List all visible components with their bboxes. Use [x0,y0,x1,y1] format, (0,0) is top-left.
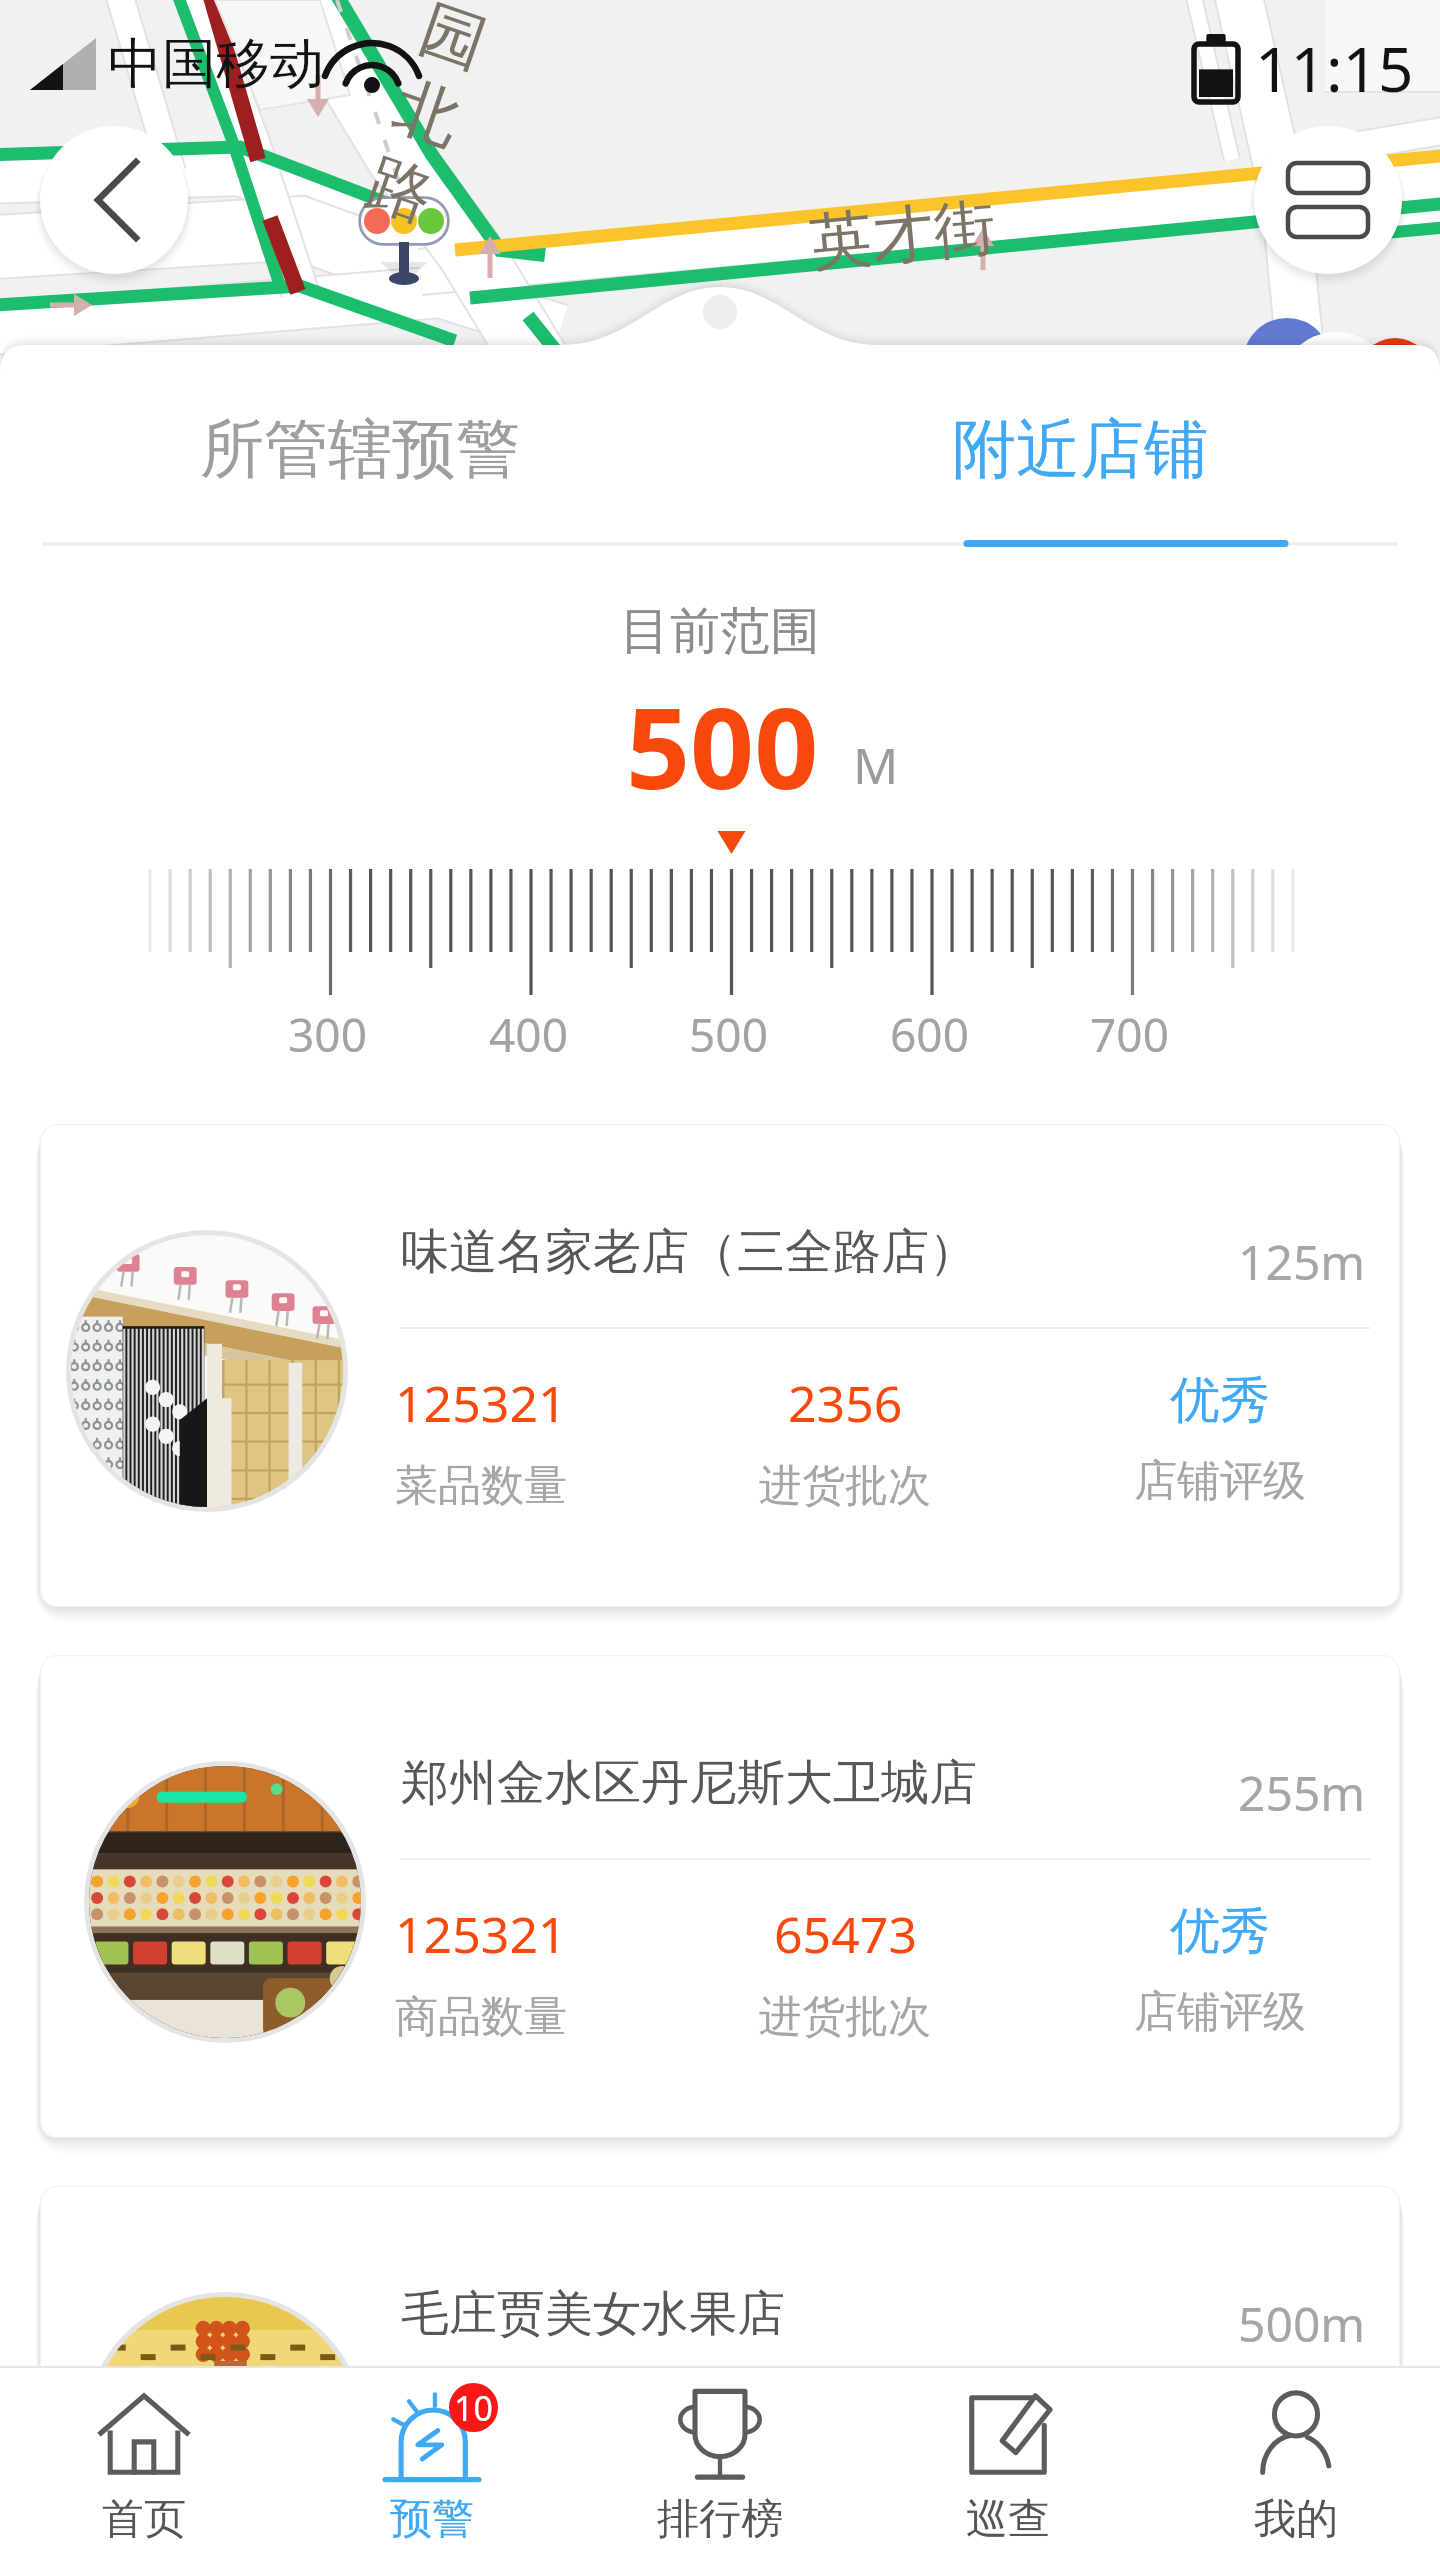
staticText: 北 [384,65,470,162]
staticText: 菜品数量 [395,1459,567,1513]
staticText: 125m [1238,1229,1366,1294]
staticText: 店铺评级 [1134,1985,1306,2039]
staticText: 65473 [774,1900,917,1968]
staticText: 进货批次 [759,2521,931,2560]
staticText: 125321 [395,1900,567,1968]
staticText: 商品数量 [395,1990,567,2044]
staticText: 500 [689,1003,768,1066]
staticText: 附近店铺 [952,409,1208,490]
button[interactable]: 10 [288,2366,576,2560]
staticText: 125321 [395,1369,567,1437]
button[interactable]: Show list [1254,126,1402,274]
button[interactable]: 我的 [1152,2366,1440,2560]
staticText: 首页 [102,2493,186,2546]
staticText: 商品数量 [395,2521,567,2560]
staticText: 优秀 [1170,1900,1270,1963]
staticText: 预警 [390,2493,474,2546]
staticText: 店铺评级 [1134,1454,1306,1508]
staticText: 我的 [1254,2493,1338,2546]
staticText: 毛庄贾美女水果店 [401,2284,785,2344]
staticText: 2356 [788,1369,903,1437]
button[interactable]: 郑州金水区丹尼斯大卫城店 [40,1655,1400,2138]
staticText: 味道名家老店（三全路店） [401,1222,977,1282]
staticText: 优秀 [1170,2431,1270,2494]
staticText: 500 [626,669,819,822]
button[interactable]: 首页 [0,2366,288,2560]
staticText: 排行榜 [657,2493,783,2546]
button[interactable]: Back [40,126,188,274]
button[interactable]: 所管辖预警 [0,345,720,545]
staticText: 400 [489,1003,568,1066]
staticText: 目前范围 [620,600,820,663]
staticText: 255m [1238,1760,1366,1825]
staticText: 所管辖预警 [200,409,520,490]
staticText: 600 [890,1003,969,1066]
staticText: 优秀 [1170,1369,1270,1432]
button[interactable]: 排行榜 [576,2366,864,2560]
staticText: 园 [410,0,497,86]
staticText: 路 [357,141,444,239]
staticText: M [853,731,899,799]
staticText: 700 [1090,1003,1169,1066]
staticText: 郑州金水区丹尼斯大卫城店 [401,1753,977,1813]
button[interactable]: 毛庄贾美女水果店 [40,2186,1400,2560]
staticText: 进货批次 [759,1990,931,2044]
staticText: 11:15 [1255,26,1414,110]
staticText: 125321 [395,2431,567,2499]
staticText: 10 [454,2385,493,2431]
staticText: 店铺评级 [1134,2516,1306,2560]
staticText: 巡查 [966,2493,1050,2546]
staticText: 300 [288,1003,367,1066]
button[interactable]: 巡查 [864,2366,1152,2560]
staticText: 中国移动 [108,30,324,98]
button[interactable]: 味道名家老店（三全路店） [40,1124,1400,1607]
button[interactable]: 附近店铺 [720,345,1440,545]
staticText: 500m [1238,2291,1366,2356]
staticText: 英才街 [807,188,999,282]
staticText: 进货批次 [759,1459,931,1513]
